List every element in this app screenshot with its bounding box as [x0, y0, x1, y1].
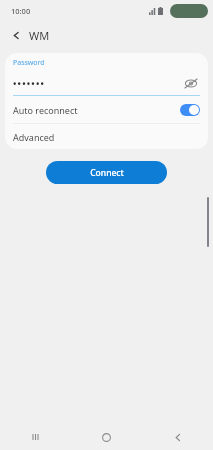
staticText: ••••••• — [13, 77, 182, 89]
button[interactable]: Connect — [46, 161, 167, 184]
button[interactable]: Back — [142, 424, 213, 450]
staticText: Connect — [90, 167, 124, 179]
button[interactable]: Auto reconnect — [5, 96, 208, 123]
staticText: Auto reconnect — [13, 104, 180, 116]
button[interactable]: Home — [71, 424, 142, 450]
button[interactable]: Password — [5, 53, 208, 96]
staticText: Password — [13, 58, 45, 68]
button[interactable]: Advanced — [5, 124, 208, 149]
button[interactable]: Auto reconnect toggle — [180, 104, 200, 116]
staticText: WM — [29, 28, 50, 43]
staticText: 10:00 — [11, 6, 31, 16]
button[interactable]: Hide password — [182, 74, 200, 92]
button[interactable]: Back — [7, 26, 25, 44]
button[interactable]: Recents — [0, 424, 71, 450]
staticText: Advanced — [13, 131, 55, 143]
